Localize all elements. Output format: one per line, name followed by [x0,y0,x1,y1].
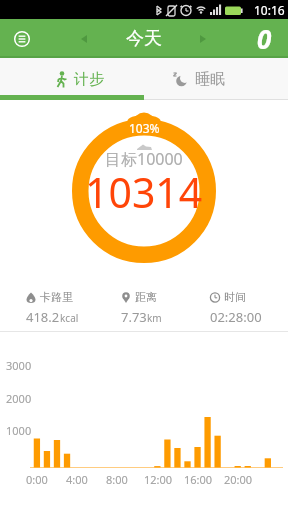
button[interactable]: 时间 [210,290,262,326]
staticText: 睡眠 [195,70,225,89]
staticText: 8:00 [106,472,128,487]
staticText: 距离 [135,290,157,304]
staticText: 02:28:00 [210,308,262,326]
staticText: 20:00 [224,472,253,487]
staticText: 1000 [6,423,32,438]
staticText: km [147,311,162,325]
button[interactable] [14,31,30,47]
staticText: 卡路里 [40,290,73,304]
staticText: 目标10000 [105,148,183,170]
staticText: 0:00 [26,472,48,487]
button[interactable]: 计步 [0,58,144,100]
staticText: 4:00 [66,472,88,487]
staticText: 计步 [74,70,104,89]
button[interactable]: 睡眠 [144,58,288,100]
staticText: 10314 [85,164,203,220]
staticText: 12:00 [144,472,173,487]
staticText: 3000 [6,358,32,373]
staticText: 418.2 [26,308,60,326]
button[interactable]: 卡路里 [26,290,79,326]
staticText: 103% [129,120,160,136]
staticText: 10:16 [254,2,285,18]
staticText: 时间 [224,290,246,304]
button[interactable]: 距离 [121,290,162,326]
button[interactable]: 0 [257,21,272,56]
staticText: 今天 [126,27,162,50]
staticText: 7.73 [121,308,147,326]
staticText: 16:00 [184,472,213,487]
staticText: 2000 [6,391,32,406]
staticText: kcal [60,311,79,325]
